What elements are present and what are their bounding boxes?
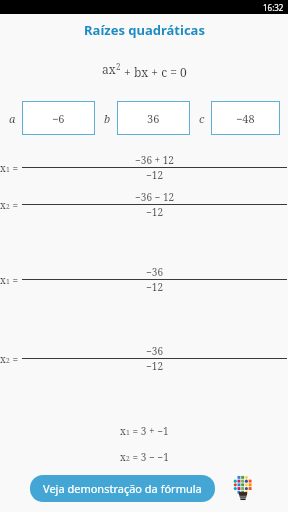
staticText: = [10,198,21,212]
staticText: 2 [6,202,10,211]
staticText: a [9,111,16,126]
staticText: = 3 + −1 [130,424,169,438]
staticText: c [199,111,205,126]
button[interactable]: −6 [22,101,95,135]
staticText: 1 [126,428,130,437]
staticText: 2 [126,454,130,463]
button[interactable]: −48 [211,101,280,135]
button[interactable]: 36 [117,101,190,135]
staticText: = [10,352,21,366]
staticText: x [0,273,6,287]
staticText: −12 [146,168,163,182]
staticText: = [10,273,21,287]
staticText: −12 [146,359,163,373]
staticText: −36 [146,344,163,358]
button[interactable]: Veja demonstração da fórmula [30,475,215,502]
staticText: −12 [146,205,163,219]
staticText: x [0,198,6,212]
staticText: ax [102,61,116,77]
staticText: −36 + 12 [135,153,174,167]
staticText: 36 [147,111,160,126]
staticText: b [104,111,111,126]
staticText: 1 [6,277,10,286]
button[interactable]: Dica [227,473,259,505]
staticText: 2 [116,61,121,72]
staticText: x [0,161,6,175]
staticText: −48 [236,111,255,126]
staticText: −6 [52,111,65,126]
staticText: 1 [6,165,10,174]
staticText: + bx + c = 0 [121,64,187,80]
staticText: = [10,161,21,175]
staticText: x [120,424,126,438]
staticText: x [0,352,6,366]
staticText: −36 [146,265,163,279]
staticText: x [120,450,126,464]
staticText: 2 [6,356,10,365]
staticText: Veja demonstração da fórmula [43,481,202,496]
staticText: −12 [146,280,163,294]
staticText: 16:32 [263,2,284,13]
staticText: −36 − 12 [135,190,175,204]
staticText: Raízes quadráticas [84,21,205,39]
staticText: = 3 − −1 [130,450,169,464]
